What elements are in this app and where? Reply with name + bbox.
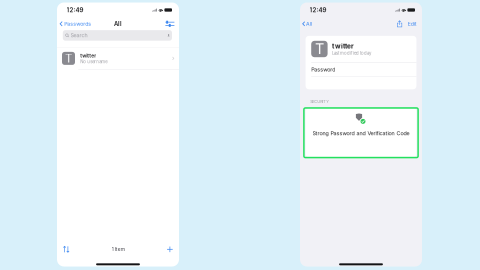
staticText: Password bbox=[311, 66, 335, 73]
staticText: Passwords bbox=[64, 21, 91, 27]
button[interactable]: Passwords bbox=[60, 19, 91, 29]
staticText: No username bbox=[80, 59, 107, 64]
button[interactable]: Share bbox=[397, 18, 402, 29]
button[interactable]: Sort bbox=[61, 243, 72, 255]
staticText: 1 Item bbox=[112, 246, 125, 252]
staticText: Search bbox=[70, 32, 87, 39]
button[interactable]: Edit bbox=[408, 19, 417, 29]
button[interactable]: T bbox=[57, 47, 179, 70]
staticText: Edit bbox=[408, 21, 417, 27]
staticText: T bbox=[315, 40, 324, 58]
button[interactable]: Add bbox=[164, 244, 175, 255]
staticText: Strong Password and Verification Code bbox=[312, 130, 409, 137]
staticText: twitter bbox=[332, 42, 354, 50]
staticText: Last modified today bbox=[332, 51, 371, 56]
staticText: 12:49 bbox=[309, 6, 326, 14]
staticText: SECURITY bbox=[310, 99, 329, 104]
button[interactable]: All bbox=[303, 19, 312, 29]
staticText: All bbox=[306, 21, 312, 27]
staticText: twitter bbox=[80, 53, 96, 59]
button[interactable]: Password bbox=[306, 62, 416, 76]
staticText: All bbox=[114, 20, 122, 27]
staticText: 12:49 bbox=[66, 6, 83, 14]
button[interactable]: Filter bbox=[165, 18, 174, 29]
staticText: T bbox=[65, 51, 72, 65]
